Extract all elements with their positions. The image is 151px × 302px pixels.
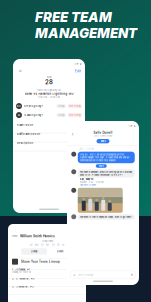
staticText: Reply (99, 165, 104, 167)
button[interactable]: Bench (47, 248, 73, 255)
staticText: Game vs. Hamilton Lightning 13U (24, 92, 73, 95)
button[interactable]: 3. J Tarantino, #3 (8, 283, 86, 291)
staticText: Going (58, 105, 64, 107)
staticText: Sat, May 10 (80, 178, 94, 181)
staticText: ◤ (131, 125, 133, 127)
button[interactable]: Close (17, 67, 24, 74)
staticText: ‹ (71, 131, 73, 137)
staticText: Everyone is really hyped by today, way t… (80, 215, 132, 218)
staticText: 28 (45, 78, 53, 86)
staticText: Player RSVP (16, 123, 33, 127)
button[interactable]: Going (56, 113, 66, 117)
staticText: Bench (57, 250, 63, 253)
staticText: ▮ (134, 125, 135, 127)
button[interactable]: Attach (73, 272, 76, 277)
staticText: Hamilton Lightning 13U (36, 89, 61, 92)
staticText: Sally Durrell (93, 131, 112, 134)
staticText: 1. J Stanyek, #1 (12, 268, 30, 271)
button[interactable]: Back (70, 130, 75, 138)
button[interactable]: Description (13, 139, 85, 148)
staticText: TU (41, 244, 43, 246)
button[interactable]: Staff/Family RSVP (13, 130, 85, 139)
staticText: Reply (100, 140, 105, 142)
staticText: BA (17, 105, 21, 107)
staticText: 2. S Tarantino, #2 (12, 277, 35, 280)
staticText: 3. J Tarantino, #3 (12, 285, 34, 288)
button[interactable]: 2. S Tarantino, #2 (8, 275, 86, 283)
staticText: William Smith Heroics (20, 234, 55, 238)
staticText: Description (16, 141, 33, 145)
staticText: You have a baseball practice coming up o… (80, 170, 133, 176)
staticText: MON (47, 76, 51, 78)
staticText: ✕ (18, 68, 22, 73)
staticText: WE (46, 244, 49, 246)
staticText: FR (57, 244, 59, 246)
staticText: Practice 3:30 - 4:30 PM (80, 181, 104, 183)
staticText: Share Your Team Lineup (21, 260, 60, 263)
staticText: Not Going (69, 114, 80, 116)
button[interactable]: Menu (12, 234, 17, 238)
staticText: MO (35, 244, 38, 246)
staticText: Not Going (69, 105, 80, 107)
staticText: Edit (75, 69, 81, 73)
staticText: Menu (12, 234, 17, 238)
staticText: Hey all, we'll be using messaging within… (80, 153, 130, 162)
staticText: Leading off home hit (12, 271, 31, 273)
staticText: ▮ (80, 63, 81, 65)
staticText: Lee's Travel Thread (94, 135, 112, 137)
staticText: JA (17, 114, 20, 116)
button[interactable]: Reply (96, 164, 107, 168)
staticText: ▾ (75, 63, 76, 65)
button[interactable]: Player RSVP (13, 121, 85, 130)
staticText: Are you going? (23, 104, 42, 108)
staticText: ◤ (77, 63, 79, 65)
staticText: SU (30, 244, 32, 246)
button[interactable]: Reply (96, 139, 109, 143)
staticText: TH (52, 244, 54, 246)
staticText: In-Box Panel (41, 240, 52, 242)
staticText: Lineup (31, 250, 37, 253)
button[interactable]: Not Going (67, 104, 82, 108)
staticText: Tap here to RSVP (80, 184, 96, 186)
staticText: MANAGEMENT (35, 25, 137, 41)
staticText: Going (58, 114, 64, 116)
button[interactable]: Lineup (21, 248, 47, 255)
button[interactable]: Share Your Team Lineup (8, 257, 86, 267)
staticText: SA (62, 244, 64, 246)
button[interactable]: Edit (75, 67, 81, 74)
button[interactable]: Not Going (67, 113, 82, 117)
staticText: ▾ (129, 125, 130, 127)
staticText: Send a message (78, 273, 93, 276)
staticText: FREE TEAM (35, 9, 112, 25)
button[interactable]: Going (56, 104, 66, 108)
staticText: Is Jason going? (23, 113, 42, 117)
staticText: 9:00 AM - 10:00 AM (38, 96, 60, 98)
button[interactable]: 1. J Stanyek, #1 (8, 267, 86, 275)
staticText: Jun 1, 2:30 PM (79, 148, 94, 150)
staticText: + (73, 272, 76, 277)
staticText: Staff/Family RSVP (16, 132, 40, 136)
